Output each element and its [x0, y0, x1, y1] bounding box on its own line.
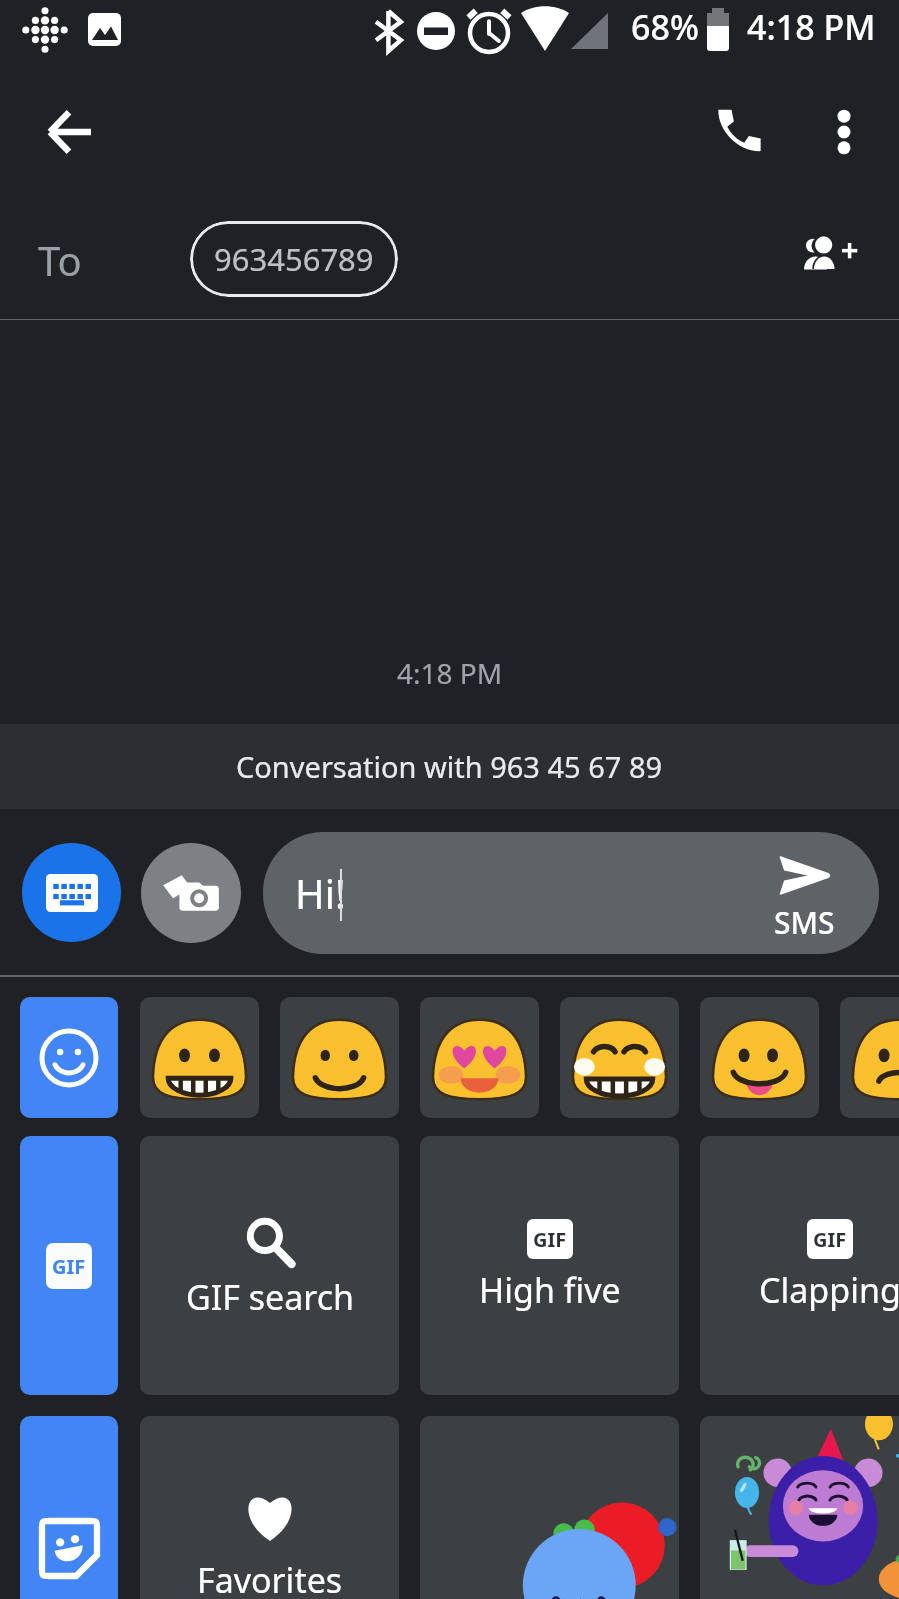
staticText: SMS: [774, 902, 835, 943]
staticText: 4:18 PM: [397, 654, 503, 692]
staticText: 963456789: [214, 238, 374, 280]
button[interactable]: Emoji 6: [840, 997, 899, 1118]
button[interactable]: Add people: [800, 222, 864, 286]
button[interactable]: Hi!: [263, 832, 879, 954]
staticText: 68%: [631, 4, 699, 50]
button[interactable]: More options: [812, 100, 876, 164]
button[interactable]: Emoji 5: [700, 997, 819, 1118]
staticText: 4:18 PM: [747, 4, 876, 50]
button[interactable]: GIF: [700, 1136, 899, 1395]
staticText: High five: [479, 1267, 621, 1313]
button[interactable]: Sticker pack: [420, 1416, 679, 1599]
button[interactable]: Favorites: [140, 1416, 399, 1599]
button[interactable]: Party sticker pack: [700, 1416, 899, 1599]
button[interactable]: Emoji: [20, 997, 118, 1118]
staticText: GIF search: [186, 1274, 354, 1320]
staticText: GIF: [533, 1226, 567, 1253]
button[interactable]: Emoji 1: [140, 997, 259, 1118]
staticText: GIF: [813, 1226, 847, 1253]
staticText: Favorites: [197, 1557, 343, 1599]
button[interactable]: Emoji 3: [420, 997, 539, 1118]
button[interactable]: Camera: [141, 843, 241, 943]
button[interactable]: GIF: [20, 1136, 118, 1395]
button[interactable]: Emoji 4: [560, 997, 679, 1118]
staticText: Clapping: [759, 1267, 899, 1313]
button[interactable]: Emoji 2: [280, 997, 399, 1118]
button[interactable]: Back: [37, 100, 101, 164]
staticText: Hi!: [295, 866, 346, 920]
button[interactable]: GIF: [420, 1136, 679, 1395]
button[interactable]: GIF search: [140, 1136, 399, 1395]
staticText: To: [38, 233, 82, 287]
staticText: Conversation with 963 45 67 89: [236, 747, 663, 786]
staticText: GIF: [52, 1253, 86, 1280]
button[interactable]: 963456789: [190, 221, 398, 297]
button[interactable]: Keyboard: [22, 843, 121, 942]
button[interactable]: Call: [707, 97, 771, 161]
button[interactable]: Stickers: [20, 1416, 118, 1599]
